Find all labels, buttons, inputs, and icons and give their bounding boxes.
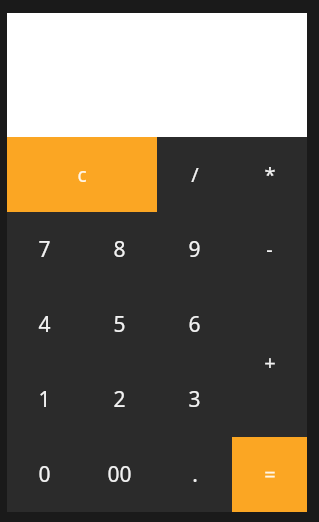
button[interactable]: - xyxy=(232,212,307,287)
button[interactable]: . xyxy=(157,437,232,512)
staticText: 3 xyxy=(188,385,201,414)
button[interactable]: 6 xyxy=(157,287,232,362)
button[interactable]: 3 xyxy=(157,362,232,437)
button[interactable]: 1 xyxy=(7,362,82,437)
button[interactable]: 8 xyxy=(82,212,157,287)
staticText: 0 xyxy=(38,460,51,489)
button[interactable]: * xyxy=(232,137,307,212)
staticText: 2 xyxy=(113,385,126,414)
button[interactable]: 2 xyxy=(82,362,157,437)
staticText: c xyxy=(77,162,87,188)
button[interactable]: 00 xyxy=(82,437,157,512)
staticText: / xyxy=(191,161,199,188)
staticText: 4 xyxy=(38,310,51,339)
button[interactable]: / xyxy=(157,137,232,212)
button[interactable]: 4 xyxy=(7,287,82,362)
button[interactable]: 9 xyxy=(157,212,232,287)
staticText: = xyxy=(264,461,276,488)
button[interactable]: c xyxy=(7,137,157,212)
staticText: 5 xyxy=(113,310,126,339)
staticText: 1 xyxy=(38,385,51,414)
staticText: 6 xyxy=(188,310,201,339)
button[interactable]: = xyxy=(232,437,307,512)
staticText: * xyxy=(264,161,276,188)
staticText: 8 xyxy=(113,235,126,264)
staticText: . xyxy=(192,460,198,489)
button[interactable]: 0 xyxy=(7,437,82,512)
button[interactable]: 5 xyxy=(82,287,157,362)
button[interactable]: + xyxy=(232,287,307,437)
staticText: - xyxy=(266,236,273,263)
button[interactable]: 7 xyxy=(7,212,82,287)
staticText: + xyxy=(264,349,276,376)
staticText: 00 xyxy=(107,460,132,489)
staticText: 9 xyxy=(188,235,201,264)
staticText: 7 xyxy=(38,235,51,264)
